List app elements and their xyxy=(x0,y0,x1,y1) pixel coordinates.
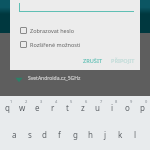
staticText: Zobrazovat heslo xyxy=(30,27,75,34)
button[interactable]: 3 xyxy=(30,99,45,121)
staticText: 5 xyxy=(70,99,73,104)
staticText: k xyxy=(118,129,123,140)
button[interactable]: l xyxy=(128,128,143,150)
staticText: PŘIPOJIT xyxy=(111,57,135,65)
staticText: 9 xyxy=(130,99,133,104)
staticText: w xyxy=(19,102,26,113)
staticText: Rozšířené možnosti xyxy=(30,41,81,48)
staticText: g xyxy=(73,129,78,140)
staticText: 6 xyxy=(85,99,88,104)
button[interactable]: 8 xyxy=(105,99,120,121)
button[interactable]: PŘIPOJIT xyxy=(108,56,138,66)
staticText: z xyxy=(81,102,85,113)
button[interactable]: k xyxy=(113,128,128,150)
button[interactable]: Rozšířené možnosti xyxy=(10,39,140,49)
button[interactable]: s xyxy=(22,128,37,150)
staticText: a xyxy=(12,129,17,140)
staticText: o xyxy=(125,102,130,113)
staticText: r xyxy=(51,102,55,113)
button[interactable]: 6 xyxy=(75,99,90,121)
button[interactable]: 5 xyxy=(60,99,75,121)
button[interactable]: f xyxy=(52,128,67,150)
button[interactable]: a xyxy=(7,128,22,150)
staticText: 4 xyxy=(55,99,58,104)
staticText: 2 xyxy=(25,99,28,104)
staticText: t xyxy=(66,102,69,113)
staticText: i xyxy=(111,102,114,113)
staticText: h xyxy=(88,129,93,140)
button[interactable]: Zobrazovat heslo xyxy=(10,25,140,35)
button[interactable]: j xyxy=(98,128,113,150)
staticText: f xyxy=(58,129,61,140)
staticText: u xyxy=(95,102,100,113)
staticText: 3 xyxy=(40,99,43,104)
button[interactable]: 0 xyxy=(135,99,150,121)
button[interactable]: 4 xyxy=(45,99,60,121)
staticText: s xyxy=(28,129,32,140)
button[interactable]: h xyxy=(83,128,98,150)
staticText: 7 xyxy=(100,99,103,104)
button[interactable]: 2 xyxy=(15,99,30,121)
button[interactable]: g xyxy=(68,128,83,150)
staticText: l xyxy=(134,129,137,140)
staticText: j xyxy=(104,129,107,140)
staticText: q xyxy=(5,102,10,113)
button[interactable]: d xyxy=(37,128,52,150)
button[interactable]: 1 xyxy=(0,99,15,121)
staticText: 0 xyxy=(145,99,148,104)
button[interactable]: Wi-Fi signal xyxy=(0,72,150,85)
button[interactable]: ZRUŠIT xyxy=(80,56,106,66)
button[interactable]: 7 xyxy=(90,99,105,121)
staticText: 8 xyxy=(115,99,118,104)
staticText: d xyxy=(42,129,47,140)
button[interactable]: 9 xyxy=(120,99,135,121)
staticText: p xyxy=(140,102,145,113)
staticText: SvetAndroida.cz_5GHz xyxy=(28,75,81,82)
staticText: 1 xyxy=(10,99,13,104)
staticText: e xyxy=(35,102,40,113)
staticText: ZRUŠIT xyxy=(83,57,103,65)
other: Wi-Fi signal xyxy=(15,75,23,83)
